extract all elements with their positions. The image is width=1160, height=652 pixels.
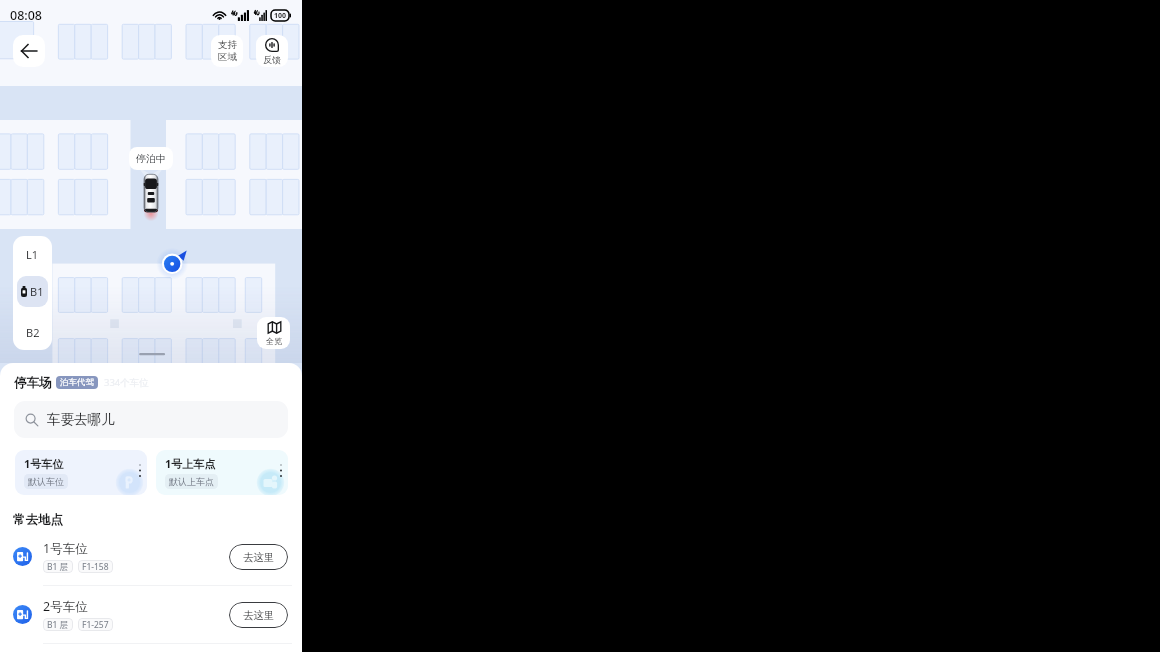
staticText: 全览: [266, 336, 282, 346]
staticText: B1 层: [47, 619, 69, 631]
staticText: 车要去哪儿: [47, 411, 115, 428]
button[interactable]: 2号车位: [0, 586, 302, 643]
staticText: F1-257: [82, 619, 109, 631]
button[interactable]: 反馈: [256, 35, 288, 67]
staticText: B1 层: [47, 561, 69, 573]
staticText: 支持 区域: [218, 39, 237, 63]
staticText: 去这里: [243, 551, 275, 564]
button[interactable]: More: [139, 464, 141, 477]
staticText: 1号车位: [43, 540, 88, 557]
staticText: 2号车位: [43, 598, 88, 615]
button[interactable]: 全览: [257, 317, 290, 349]
button[interactable]: 支持 区域: [211, 35, 243, 67]
button[interactable]: 1号车位: [15, 450, 147, 495]
staticText: 默认车位: [28, 476, 64, 487]
staticText: 默认上车点: [169, 476, 214, 487]
button[interactable]: 去这里: [229, 544, 288, 570]
button[interactable]: L1: [13, 241, 52, 268]
staticText: 常去地点: [13, 512, 63, 528]
button[interactable]: Back: [13, 35, 45, 67]
button[interactable]: 去这里: [229, 602, 288, 628]
staticText: 去这里: [243, 609, 275, 622]
button[interactable]: B1: [17, 276, 48, 307]
other: Search: [25, 413, 39, 427]
staticText: 停车场: [14, 375, 52, 389]
staticText: 08:08: [10, 7, 43, 24]
button[interactable]: B2: [13, 319, 52, 346]
staticText: 100: [274, 11, 287, 21]
button[interactable]: Search: [14, 401, 288, 438]
staticText: F1-158: [82, 561, 109, 573]
staticText: 1号车位: [24, 456, 64, 471]
staticText: 反馈: [263, 54, 281, 65]
staticText: B2: [26, 325, 40, 340]
staticText: 1号上车点: [165, 456, 216, 471]
button[interactable]: 1号上车点: [156, 450, 288, 495]
staticText: B1: [30, 284, 44, 299]
staticText: 334个车位: [104, 376, 149, 389]
staticText: 停泊中: [136, 152, 166, 165]
button[interactable]: 1号车位: [0, 528, 302, 585]
staticText: 泊车代驾: [60, 377, 94, 388]
button[interactable]: More: [280, 464, 282, 477]
staticText: L1: [26, 247, 39, 262]
